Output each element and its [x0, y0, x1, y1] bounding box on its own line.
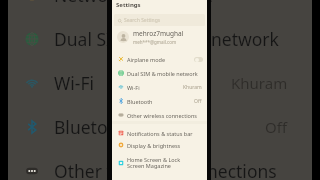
staticText: Settings: [116, 1, 141, 9]
staticText: mehroz7mughal: [133, 29, 184, 38]
button[interactable]: Other wireless connections: [112, 108, 207, 122]
staticText: Khuram: [183, 84, 202, 91]
staticText: Off: [194, 98, 202, 105]
staticText: Dual SIM & mobile network: [127, 70, 198, 77]
staticText: Network & internet: [54, 0, 213, 7]
staticText: Bluetooth: [54, 115, 136, 139]
staticText: Off: [265, 117, 288, 137]
staticText: Airplane mode: [127, 56, 165, 63]
staticText: Other wireless connections: [54, 159, 277, 180]
button[interactable]: Bluetooth: [8, 106, 312, 147]
button[interactable]: Bluetooth: [112, 94, 207, 108]
staticText: Search Settings: [124, 17, 161, 24]
staticText: Khuram: [231, 73, 288, 93]
button[interactable]: Dual SIM & mobile network: [112, 66, 207, 80]
staticText: meh***@gmail.com: [133, 39, 177, 45]
button[interactable]: Search Settings: [114, 14, 205, 26]
button[interactable]: Display & brightness: [112, 138, 207, 152]
staticText: Other wireless connections: [127, 112, 197, 119]
button[interactable]: Home Screen & Lock Screen Magazine: [112, 156, 207, 170]
button[interactable]: Notifications & status bar: [112, 126, 207, 140]
button[interactable]: Wi-Fi: [112, 80, 207, 94]
staticText: Dual SIM & mobile network: [54, 27, 279, 51]
button[interactable]: mehroz7mughal: [112, 27, 207, 47]
button[interactable]: Other wireless connections: [8, 150, 312, 180]
button[interactable]: Network & internet: [8, 0, 312, 15]
staticText: Notifications & status bar: [127, 130, 193, 137]
other: Airplane mode toggle: [194, 57, 203, 62]
staticText: Display & brightness: [127, 142, 181, 149]
staticText: Bluetooth: [127, 98, 153, 105]
button[interactable]: Airplane mode: [112, 52, 207, 66]
staticText: Wi-Fi: [54, 71, 95, 95]
button[interactable]: Dual SIM & mobile network: [8, 18, 312, 59]
staticText: Wi-Fi: [127, 84, 140, 91]
staticText: Home Screen & Lock Screen Magazine: [127, 156, 181, 170]
button[interactable]: Wi-Fi: [8, 62, 312, 103]
